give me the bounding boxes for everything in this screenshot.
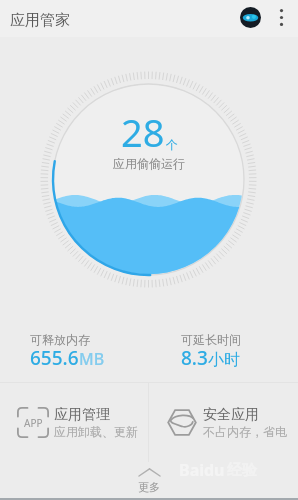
staticText: 可延长时间: [181, 332, 241, 347]
staticText: Baidu: [179, 459, 225, 481]
button[interactable]: More options: [271, 7, 291, 27]
staticText: 应用管理: [54, 406, 110, 424]
button[interactable]: 可延长时间: [149, 322, 298, 382]
staticText: 可释放内存: [30, 332, 90, 347]
button[interactable]: Scan: [238, 5, 262, 29]
button[interactable]: 安全应用: [149, 383, 298, 462]
staticText: 安全应用: [203, 406, 259, 424]
staticText: MB: [79, 348, 105, 370]
staticText: 更多: [138, 480, 160, 494]
staticText: 个: [166, 137, 178, 152]
staticText: 应用管家: [10, 11, 70, 30]
staticText: 小时: [208, 350, 240, 370]
staticText: 不占内存，省电: [203, 424, 287, 439]
staticText: 28: [121, 106, 165, 158]
button[interactable]: APP: [0, 383, 148, 462]
staticText: 应用卸载、更新: [54, 424, 138, 439]
staticText: 8.3: [181, 345, 208, 371]
staticText: 应用偷偷运行: [113, 156, 185, 171]
staticText: 655.6: [30, 345, 79, 371]
staticText: APP: [24, 416, 43, 430]
button[interactable]: 更多: [138, 468, 160, 494]
button[interactable]: 可释放内存: [0, 322, 149, 382]
